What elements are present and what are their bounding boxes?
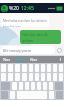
- button[interactable]: Call: [48, 5, 55, 12]
- staticText: gelirim: [22, 38, 34, 43]
- button[interactable]: [8, 64, 13, 72]
- button[interactable]: [22, 73, 27, 81]
- button[interactable]: Tabi olur ben de: [20, 30, 61, 44]
- button[interactable]: [37, 82, 41, 90]
- button[interactable]: [43, 82, 47, 90]
- button[interactable]: [53, 73, 57, 81]
- button[interactable]: Merhaba nasilsin bu aksam: [1, 14, 49, 27]
- button[interactable]: [31, 82, 35, 90]
- button[interactable]: Video call: [56, 5, 63, 12]
- button[interactable]: [12, 82, 17, 90]
- button[interactable]: [59, 64, 63, 72]
- button[interactable]: [25, 82, 29, 90]
- button[interactable]: [35, 73, 39, 81]
- button[interactable]: [53, 64, 57, 72]
- staticText: bize bir sey: [3, 24, 21, 27]
- button[interactable]: [1, 73, 6, 81]
- button[interactable]: [49, 82, 53, 90]
- button[interactable]: Contact photo: [1, 5, 8, 12]
- button[interactable]: [29, 73, 33, 81]
- button[interactable]: nasil: [16, 57, 25, 62]
- button[interactable]: [22, 64, 27, 72]
- staticText: Naz: [30, 57, 38, 62]
- button[interactable]: [41, 64, 45, 72]
- button[interactable]: [29, 64, 33, 72]
- staticText: 12:45: [21, 5, 34, 12]
- button[interactable]: Naz: [30, 57, 38, 62]
- button[interactable]: Emoji: [10, 91, 15, 99]
- button[interactable]: [15, 64, 20, 72]
- button[interactable]: [8, 73, 13, 81]
- staticText: Bir mesaj yazin: [3, 48, 32, 53]
- button[interactable]: [47, 64, 51, 72]
- button[interactable]: Camera: [55, 46, 63, 54]
- staticText: Merhaba nasilsin bu aksam: [3, 18, 47, 23]
- button[interactable]: [35, 64, 39, 72]
- button[interactable]: Bir mesaj yazin: [1, 46, 55, 54]
- button[interactable]: [47, 73, 51, 81]
- button[interactable]: Naz: [3, 57, 11, 62]
- staticText: Tabi olur ben de: [22, 32, 48, 37]
- staticText: Naz: [3, 57, 11, 62]
- button[interactable]: [19, 82, 23, 90]
- button[interactable]: [59, 73, 63, 81]
- staticText: nasil: [16, 57, 25, 62]
- button[interactable]: [49, 91, 54, 99]
- staticText: %20: [9, 5, 19, 12]
- button[interactable]: [15, 73, 20, 81]
- button[interactable]: [41, 73, 45, 81]
- button[interactable]: [1, 64, 6, 72]
